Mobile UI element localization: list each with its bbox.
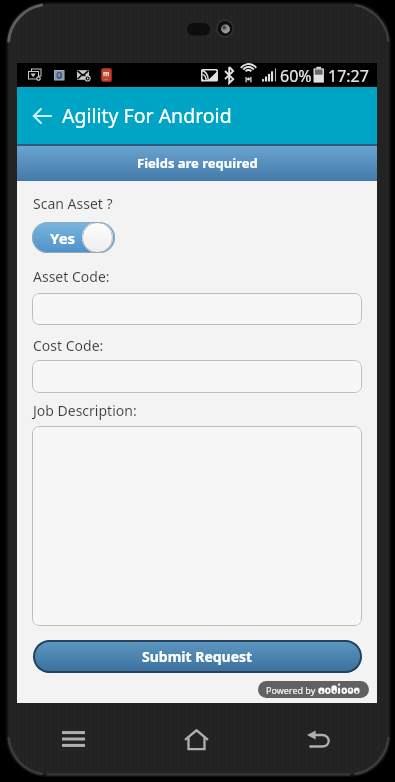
staticText: Yes (50, 228, 76, 248)
staticText: Scan Asset ? (33, 194, 113, 213)
button[interactable]: Submit Request (33, 640, 362, 673)
button[interactable] (32, 293, 362, 325)
staticText: Job Description: (33, 401, 137, 420)
button[interactable]: Back (283, 716, 354, 762)
button[interactable]: Home (161, 716, 232, 762)
staticText: Powered by (266, 684, 316, 696)
button[interactable] (32, 426, 362, 626)
button[interactable]: Yes (32, 222, 115, 253)
staticText: Agility For Android (62, 102, 232, 129)
staticText: Asset Code: (33, 267, 110, 286)
staticText: 60% (280, 65, 312, 87)
button[interactable]: Navigate up (22, 87, 62, 144)
staticText: Fields are required (137, 154, 258, 172)
staticText: Cost Code: (33, 336, 104, 355)
staticText: Submit Request (142, 647, 253, 666)
button[interactable]: Recent apps (38, 716, 109, 762)
button[interactable] (32, 360, 362, 393)
staticText: 17:27 (328, 65, 369, 87)
